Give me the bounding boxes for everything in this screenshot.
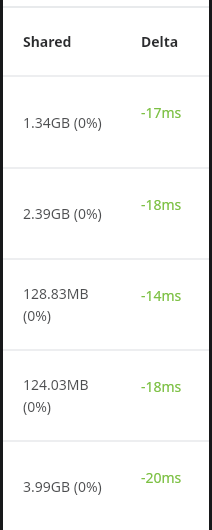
button[interactable]: Shared: [3, 8, 209, 75]
staticText: -17ms: [141, 103, 182, 122]
staticText: -20ms: [141, 468, 182, 487]
button[interactable]: 128.83MB (0%): [3, 260, 209, 349]
staticText: 124.03MB (0%): [23, 375, 89, 416]
staticText: 128.83MB (0%): [23, 284, 89, 325]
staticText: -18ms: [141, 377, 182, 396]
staticText: Shared: [23, 32, 141, 51]
staticText: Delta: [141, 32, 197, 51]
staticText: 3.99GB (0%): [23, 477, 102, 496]
button[interactable]: 124.03MB (0%): [3, 351, 209, 440]
staticText: -18ms: [141, 195, 182, 214]
staticText: 1.34GB (0%): [23, 113, 102, 132]
button[interactable]: 2.39GB (0%): [3, 169, 209, 258]
button[interactable]: 3.99GB (0%): [3, 442, 209, 530]
staticText: 2.39GB (0%): [23, 204, 102, 223]
staticText: -14ms: [141, 286, 182, 305]
button[interactable]: 1.34GB (0%): [3, 77, 209, 167]
